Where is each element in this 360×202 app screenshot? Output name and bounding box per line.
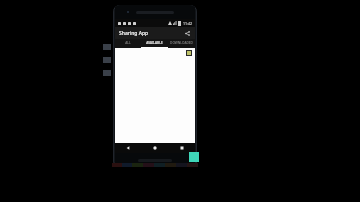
button[interactable]: ALL xyxy=(115,39,141,47)
button[interactable]: Recent apps xyxy=(168,143,195,153)
button[interactable]: DOWNLOADED xyxy=(168,39,195,47)
staticText: 11:42 xyxy=(183,21,192,26)
staticText: Sharing App xyxy=(119,30,149,37)
staticText: AVAILABLE xyxy=(146,41,163,45)
button[interactable]: Item thumbnail xyxy=(186,50,192,56)
button[interactable]: Back xyxy=(115,143,141,153)
button[interactable]: AVAILABLE xyxy=(141,39,168,47)
staticText: DOWNLOADED xyxy=(170,41,193,45)
button[interactable]: Home xyxy=(141,143,168,153)
staticText: ALL xyxy=(125,41,131,45)
button[interactable]: Share xyxy=(183,29,191,37)
